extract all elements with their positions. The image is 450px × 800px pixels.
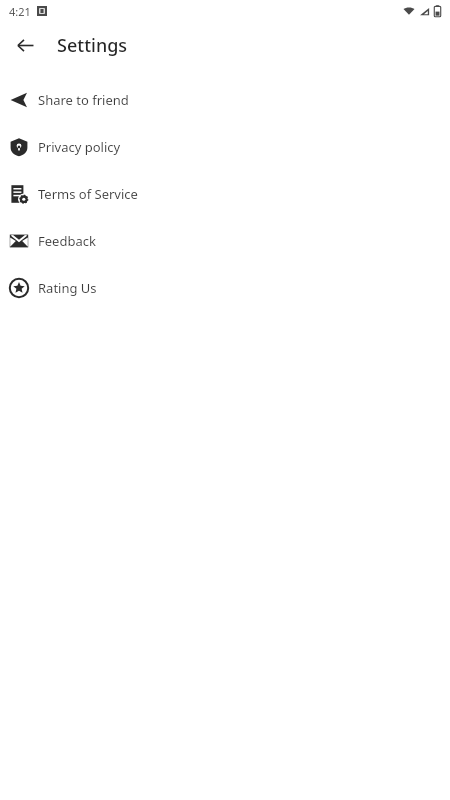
button[interactable]: Rating Us — [0, 264, 450, 311]
button[interactable]: Terms of Service — [0, 170, 450, 217]
button[interactable]: Privacy policy — [0, 123, 450, 170]
staticText: Settings — [57, 33, 128, 58]
button[interactable]: Back — [9, 29, 41, 61]
staticText: Share to friend — [38, 91, 129, 109]
staticText: Terms of Service — [38, 185, 138, 203]
button[interactable]: Share to friend — [0, 76, 450, 123]
staticText: Rating Us — [38, 279, 97, 297]
button[interactable]: Feedback — [0, 217, 450, 264]
staticText: Privacy policy — [38, 138, 121, 156]
staticText: Feedback — [38, 232, 96, 250]
staticText: 4:21 — [9, 4, 31, 19]
